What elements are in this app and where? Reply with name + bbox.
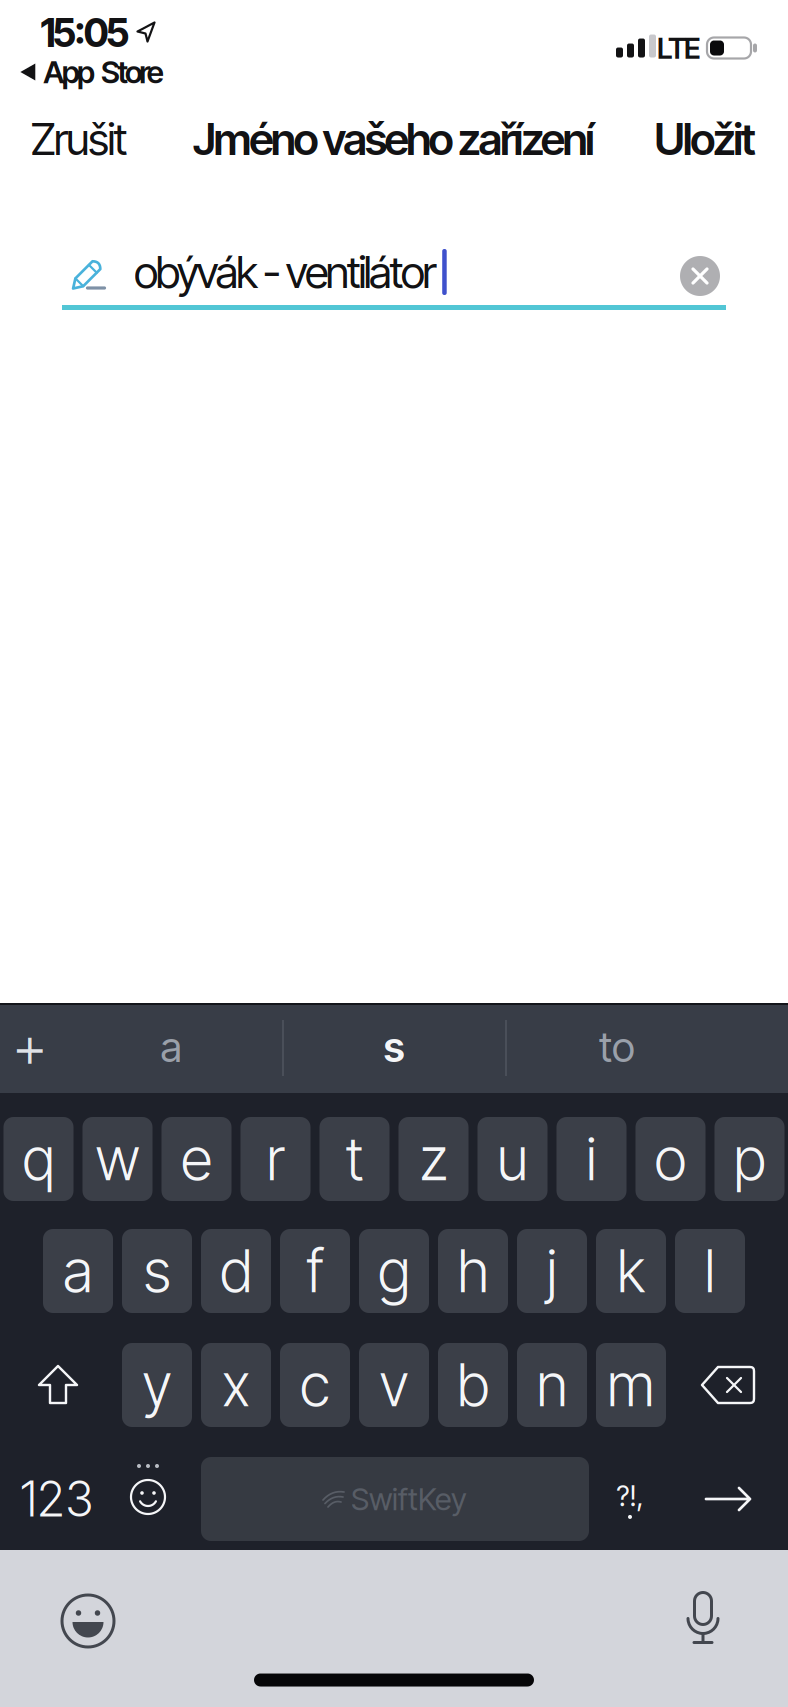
button[interactable]: Punctuation bbox=[595, 1457, 665, 1541]
button[interactable]: Shift bbox=[3, 1343, 113, 1427]
staticText: p bbox=[733, 1123, 766, 1194]
button[interactable]: k bbox=[596, 1229, 666, 1313]
button[interactable]: i bbox=[556, 1117, 626, 1201]
staticText: LTE bbox=[657, 30, 701, 66]
staticText: Zrušit bbox=[30, 112, 127, 166]
button[interactable]: x bbox=[201, 1343, 271, 1427]
button[interactable]: c bbox=[280, 1343, 350, 1427]
staticText: to bbox=[599, 1022, 635, 1072]
button[interactable]: v bbox=[359, 1343, 429, 1427]
button[interactable]: d bbox=[201, 1229, 271, 1313]
staticText: l bbox=[704, 1235, 716, 1306]
button[interactable]: w bbox=[82, 1117, 152, 1201]
staticText: a bbox=[62, 1235, 93, 1306]
button[interactable]: t bbox=[319, 1117, 389, 1201]
staticText: b bbox=[456, 1349, 489, 1420]
staticText: SwiftKey bbox=[351, 1480, 467, 1517]
staticText: m bbox=[606, 1349, 655, 1420]
button[interactable]: Numbers bbox=[7, 1457, 107, 1541]
button[interactable]: z bbox=[398, 1117, 468, 1201]
button[interactable]: Space bbox=[201, 1457, 589, 1541]
button[interactable]: to bbox=[508, 1003, 726, 1091]
staticText: Uložit bbox=[654, 112, 756, 166]
staticText: Jméno vašeho zařízení bbox=[193, 112, 595, 166]
button[interactable]: r bbox=[240, 1117, 310, 1201]
button[interactable]: Clear text bbox=[680, 256, 720, 296]
button[interactable]: o bbox=[635, 1117, 705, 1201]
button[interactable]: Expand predictions bbox=[0, 1003, 60, 1091]
button[interactable]: Delete bbox=[673, 1343, 783, 1427]
button[interactable]: s bbox=[285, 1003, 503, 1091]
staticText: y bbox=[142, 1349, 172, 1420]
staticText: 123 bbox=[20, 1470, 94, 1528]
staticText: App bbox=[43, 53, 95, 90]
button[interactable]: g bbox=[359, 1229, 429, 1313]
staticText: w bbox=[95, 1123, 140, 1194]
staticText: t bbox=[345, 1123, 364, 1194]
button[interactable]: Return bbox=[678, 1457, 778, 1541]
staticText: e bbox=[180, 1123, 212, 1194]
staticText: i bbox=[585, 1123, 597, 1194]
button[interactable]: Uložit bbox=[654, 112, 756, 166]
button[interactable]: Zrušit bbox=[30, 112, 127, 166]
staticText: s bbox=[143, 1235, 171, 1306]
staticText: x bbox=[221, 1349, 250, 1420]
staticText: n bbox=[536, 1349, 568, 1420]
button[interactable]: a bbox=[62, 1003, 280, 1091]
staticText: o bbox=[654, 1123, 687, 1194]
staticText: v bbox=[379, 1349, 409, 1420]
staticText: h bbox=[457, 1235, 489, 1306]
button[interactable]: n bbox=[517, 1343, 587, 1427]
staticText: obývák - ventilátor bbox=[134, 245, 436, 299]
staticText: s bbox=[383, 1022, 404, 1072]
button[interactable]: m bbox=[596, 1343, 666, 1427]
staticText: + bbox=[12, 1012, 48, 1082]
staticText: k bbox=[616, 1235, 645, 1306]
staticText: 15:05 bbox=[40, 10, 130, 56]
staticText: d bbox=[219, 1235, 252, 1306]
staticText: r bbox=[266, 1123, 285, 1194]
button[interactable]: p bbox=[714, 1117, 784, 1201]
staticText: Store bbox=[101, 53, 164, 90]
button[interactable]: u bbox=[477, 1117, 547, 1201]
staticText: c bbox=[299, 1349, 330, 1420]
staticText: j bbox=[546, 1235, 558, 1306]
button[interactable]: Emoji keyboard bbox=[61, 1594, 115, 1648]
button[interactable]: q bbox=[3, 1117, 73, 1201]
button[interactable]: l bbox=[675, 1229, 745, 1313]
button[interactable]: h bbox=[438, 1229, 508, 1313]
staticText: f bbox=[305, 1235, 324, 1306]
button[interactable]: j bbox=[517, 1229, 587, 1313]
button[interactable]: e bbox=[161, 1117, 231, 1201]
button[interactable]: y bbox=[122, 1343, 192, 1427]
button[interactable]: Back to App Store bbox=[20, 53, 164, 90]
staticText: u bbox=[496, 1123, 528, 1194]
staticText: g bbox=[377, 1235, 410, 1306]
staticText: q bbox=[22, 1123, 55, 1194]
staticText: a bbox=[160, 1022, 181, 1072]
button[interactable]: a bbox=[43, 1229, 113, 1313]
button[interactable]: Emoji bbox=[108, 1448, 188, 1532]
staticText: ?!, bbox=[616, 1479, 643, 1513]
button[interactable]: Dictation bbox=[682, 1591, 724, 1644]
staticText: z bbox=[419, 1123, 448, 1194]
button[interactable]: s bbox=[122, 1229, 192, 1313]
button[interactable]: f bbox=[280, 1229, 350, 1313]
button[interactable]: b bbox=[438, 1343, 508, 1427]
